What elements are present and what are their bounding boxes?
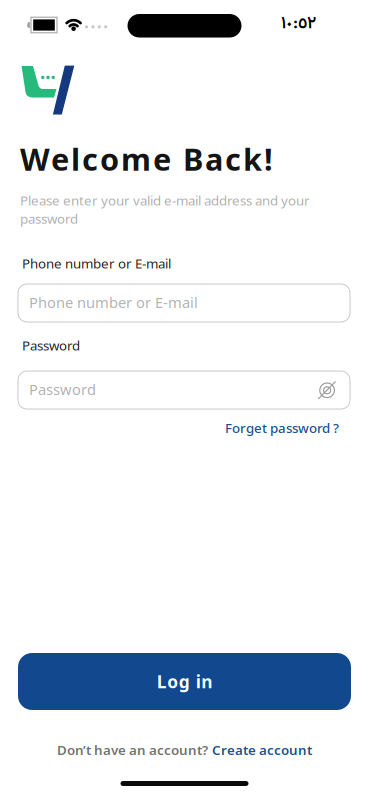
staticText: Please enter your valid e-mail address a… [20,191,310,227]
staticText: Phone number or E-mail [22,254,171,272]
staticText: Log in [157,670,212,693]
staticText: Forget password ? [225,419,339,437]
staticText: ١٠:٥٢ [281,10,316,38]
button[interactable]: Password [18,371,350,409]
staticText: Phone number or E-mail [29,292,198,312]
staticText: Password [29,379,96,399]
button[interactable]: Log in [18,653,351,710]
button[interactable]: Forget password ? [225,419,339,437]
button[interactable]: Show password [318,382,336,399]
staticText: Password [22,336,80,354]
button[interactable]: Phone number or E-mail [18,284,350,322]
staticText: Welcome Back! [20,138,273,179]
staticText: Create account [212,741,312,759]
staticText: Don’t have an account? [57,741,208,759]
button[interactable]: Create account [212,741,312,759]
